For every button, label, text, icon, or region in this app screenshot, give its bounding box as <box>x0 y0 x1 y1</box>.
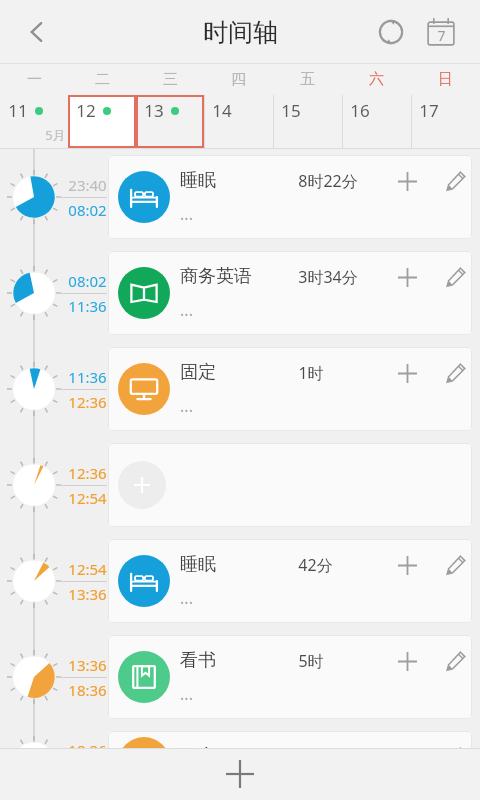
staticText: 11 <box>8 99 28 122</box>
button[interactable]: 15 <box>273 95 342 148</box>
button[interactable]: 11 <box>0 95 68 148</box>
button[interactable]: 商务英语 <box>108 251 472 335</box>
button[interactable]: Add <box>386 640 428 682</box>
button[interactable]: Edit <box>440 544 472 586</box>
staticText: 时间轴 <box>203 17 278 48</box>
staticText: 12 <box>76 99 96 122</box>
button[interactable]: Sync <box>366 7 416 57</box>
button[interactable]: Edit <box>440 736 472 778</box>
button[interactable]: Add <box>386 160 428 202</box>
staticText: 固定 <box>180 361 216 384</box>
staticText: 日 <box>438 70 453 89</box>
button[interactable]: 13 <box>136 95 204 148</box>
staticText: 12:54 <box>68 559 107 579</box>
staticText: 5时 <box>298 650 324 672</box>
button[interactable]: Add <box>386 544 428 586</box>
button[interactable]: 12 <box>68 95 136 148</box>
button[interactable]: Edit <box>440 256 472 298</box>
staticText: 8时22分 <box>298 170 358 192</box>
button[interactable]: Edit <box>440 160 472 202</box>
button[interactable]: Calendar <box>416 7 466 57</box>
button[interactable]: Back <box>10 5 64 59</box>
staticText: 1时 <box>298 362 324 384</box>
button[interactable]: Add <box>386 736 428 778</box>
staticText: 四 <box>231 70 246 89</box>
button[interactable]: 睡眠 <box>108 155 472 239</box>
staticText: 11:36 <box>68 296 107 316</box>
staticText: 23:40 <box>68 175 107 195</box>
staticText: 12:54 <box>68 488 107 508</box>
staticText: 17 <box>419 99 439 122</box>
staticText: ... <box>180 587 193 609</box>
staticText: 13:36 <box>68 584 107 604</box>
button[interactable]: Edit <box>440 640 472 682</box>
staticText: 12:36 <box>68 463 107 483</box>
button[interactable]: 14 <box>204 95 273 148</box>
staticText: 16 <box>350 99 370 122</box>
staticText: 5月 <box>45 126 66 144</box>
staticText: 睡眠 <box>180 169 216 192</box>
button[interactable]: 16 <box>342 95 411 148</box>
staticText: 固定 <box>180 745 216 768</box>
button[interactable]: Add entry <box>118 461 166 509</box>
staticText: ... <box>180 683 193 705</box>
button[interactable]: 17 <box>411 95 480 148</box>
staticText: 42分 <box>298 554 333 576</box>
staticText: 六 <box>369 70 384 89</box>
staticText: 18:36 <box>68 740 107 760</box>
staticText: ... <box>180 299 193 321</box>
staticText: ... <box>180 395 193 417</box>
staticText: 12:36 <box>68 392 107 412</box>
staticText: 15 <box>281 99 301 122</box>
staticText: ... <box>180 203 193 225</box>
staticText: 11:36 <box>68 367 107 387</box>
staticText: 一 <box>27 70 42 89</box>
button[interactable]: Edit <box>440 352 472 394</box>
button[interactable]: Add <box>386 352 428 394</box>
staticText: 13 <box>144 99 164 122</box>
staticText: 商务英语 <box>180 265 252 288</box>
staticText: 睡眠 <box>180 553 216 576</box>
button[interactable]: 固定 <box>108 731 472 794</box>
staticText: 二 <box>95 70 110 89</box>
staticText: 13:36 <box>68 655 107 675</box>
button[interactable]: 睡眠 <box>108 539 472 623</box>
staticText: 08:02 <box>68 271 107 291</box>
button[interactable]: Add record <box>214 748 266 800</box>
staticText: 3时34分 <box>298 266 358 288</box>
staticText: 三 <box>163 70 178 89</box>
staticText: 7 <box>437 26 446 45</box>
staticText: 五 <box>300 70 315 89</box>
staticText: 18:36 <box>68 680 107 700</box>
staticText: 看书 <box>180 649 216 672</box>
button[interactable]: 固定 <box>108 347 472 431</box>
staticText: 08:02 <box>68 200 107 220</box>
button[interactable]: Add <box>386 256 428 298</box>
staticText: 14 <box>212 99 232 122</box>
button[interactable]: Add entry <box>108 443 472 527</box>
staticText: 45分 <box>298 746 333 768</box>
button[interactable]: 看书 <box>108 635 472 719</box>
